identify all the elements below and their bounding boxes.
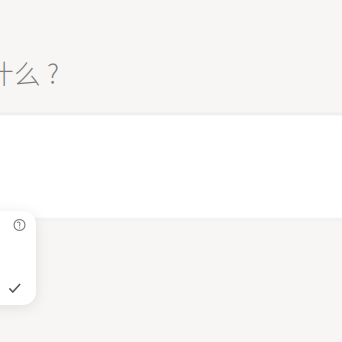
staticText: 什么 ?	[0, 53, 59, 91]
button[interactable]: Help	[0, 210, 36, 240]
button[interactable]: Selected	[0, 273, 36, 303]
